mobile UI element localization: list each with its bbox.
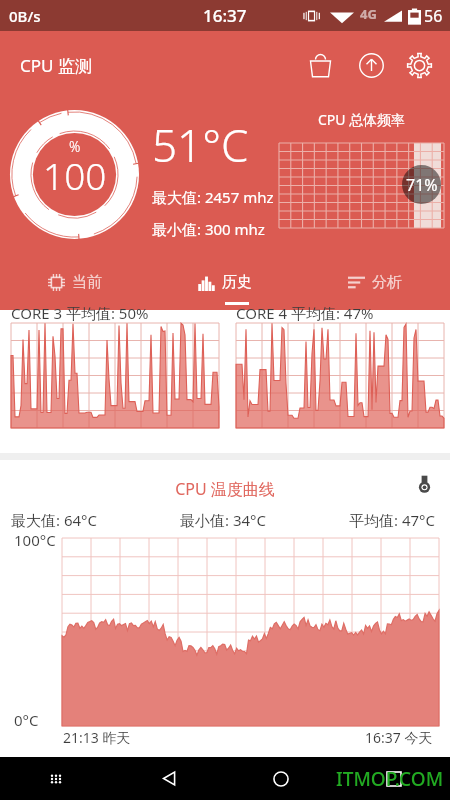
- staticText: 100°C: [14, 530, 56, 550]
- staticText: CORE 3 平均值: 50%: [11, 303, 149, 323]
- staticText: ITMOP.COM: [336, 766, 444, 792]
- button[interactable]: Settings: [399, 41, 440, 89]
- staticText: CPU 监测: [20, 54, 92, 77]
- staticText: 71%: [406, 174, 438, 196]
- staticText: 21:13 昨天: [63, 728, 131, 747]
- staticText: 100: [43, 150, 107, 200]
- staticText: 最小值: 300 mhz: [152, 219, 265, 239]
- button[interactable]: Home: [259, 757, 303, 800]
- staticText: 16:37: [203, 4, 247, 27]
- staticText: %: [69, 137, 81, 156]
- staticText: 当前: [72, 273, 102, 292]
- button[interactable]: Store: [296, 41, 344, 89]
- button[interactable]: Back: [147, 757, 191, 800]
- button[interactable]: 历史: [150, 254, 300, 310]
- staticText: CPU 温度曲线: [0, 478, 450, 500]
- staticText: 最大值: 64°C: [11, 510, 97, 530]
- button[interactable]: Upgrade: [347, 41, 395, 89]
- staticText: CPU 总体频率: [279, 110, 444, 129]
- staticText: 最大值: 2457 mhz: [152, 187, 274, 207]
- staticText: 0°C: [14, 710, 39, 730]
- staticText: 56: [424, 5, 443, 27]
- staticText: CORE 4 平均值: 47%: [236, 303, 374, 323]
- staticText: 分析: [372, 273, 402, 292]
- button[interactable]: 分析: [300, 254, 450, 310]
- button[interactable]: 当前: [0, 254, 150, 310]
- staticText: 平均值: 47°C: [349, 510, 435, 530]
- staticText: 16:37 今天: [365, 728, 433, 747]
- staticText: 51°C: [152, 115, 249, 175]
- staticText: 4G: [360, 5, 377, 23]
- button[interactable]: Menu: [34, 757, 78, 800]
- staticText: 最小值: 34°C: [180, 510, 266, 530]
- staticText: 历史: [222, 273, 252, 292]
- staticText: 0B/s: [9, 6, 41, 26]
- button[interactable]: Recents: [372, 757, 416, 800]
